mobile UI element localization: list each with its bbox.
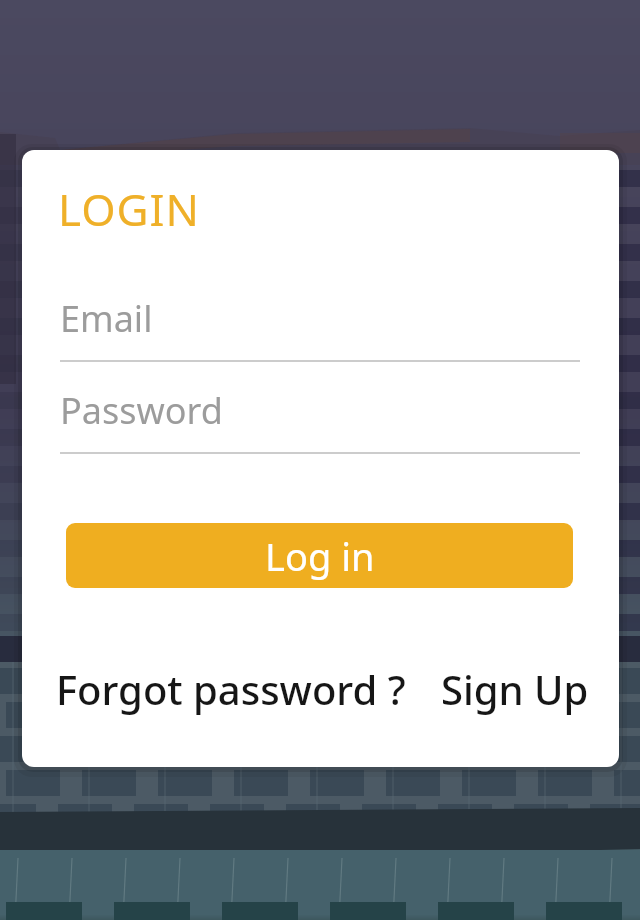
button[interactable]: Log in [66, 523, 573, 588]
staticText: LOGIN [58, 179, 200, 239]
staticText: Log in [265, 530, 375, 582]
staticText: Password [60, 386, 223, 435]
staticText: Email [60, 294, 153, 343]
button[interactable]: Forgot password ? [56, 662, 406, 716]
button[interactable]: Sign Up [441, 662, 589, 716]
